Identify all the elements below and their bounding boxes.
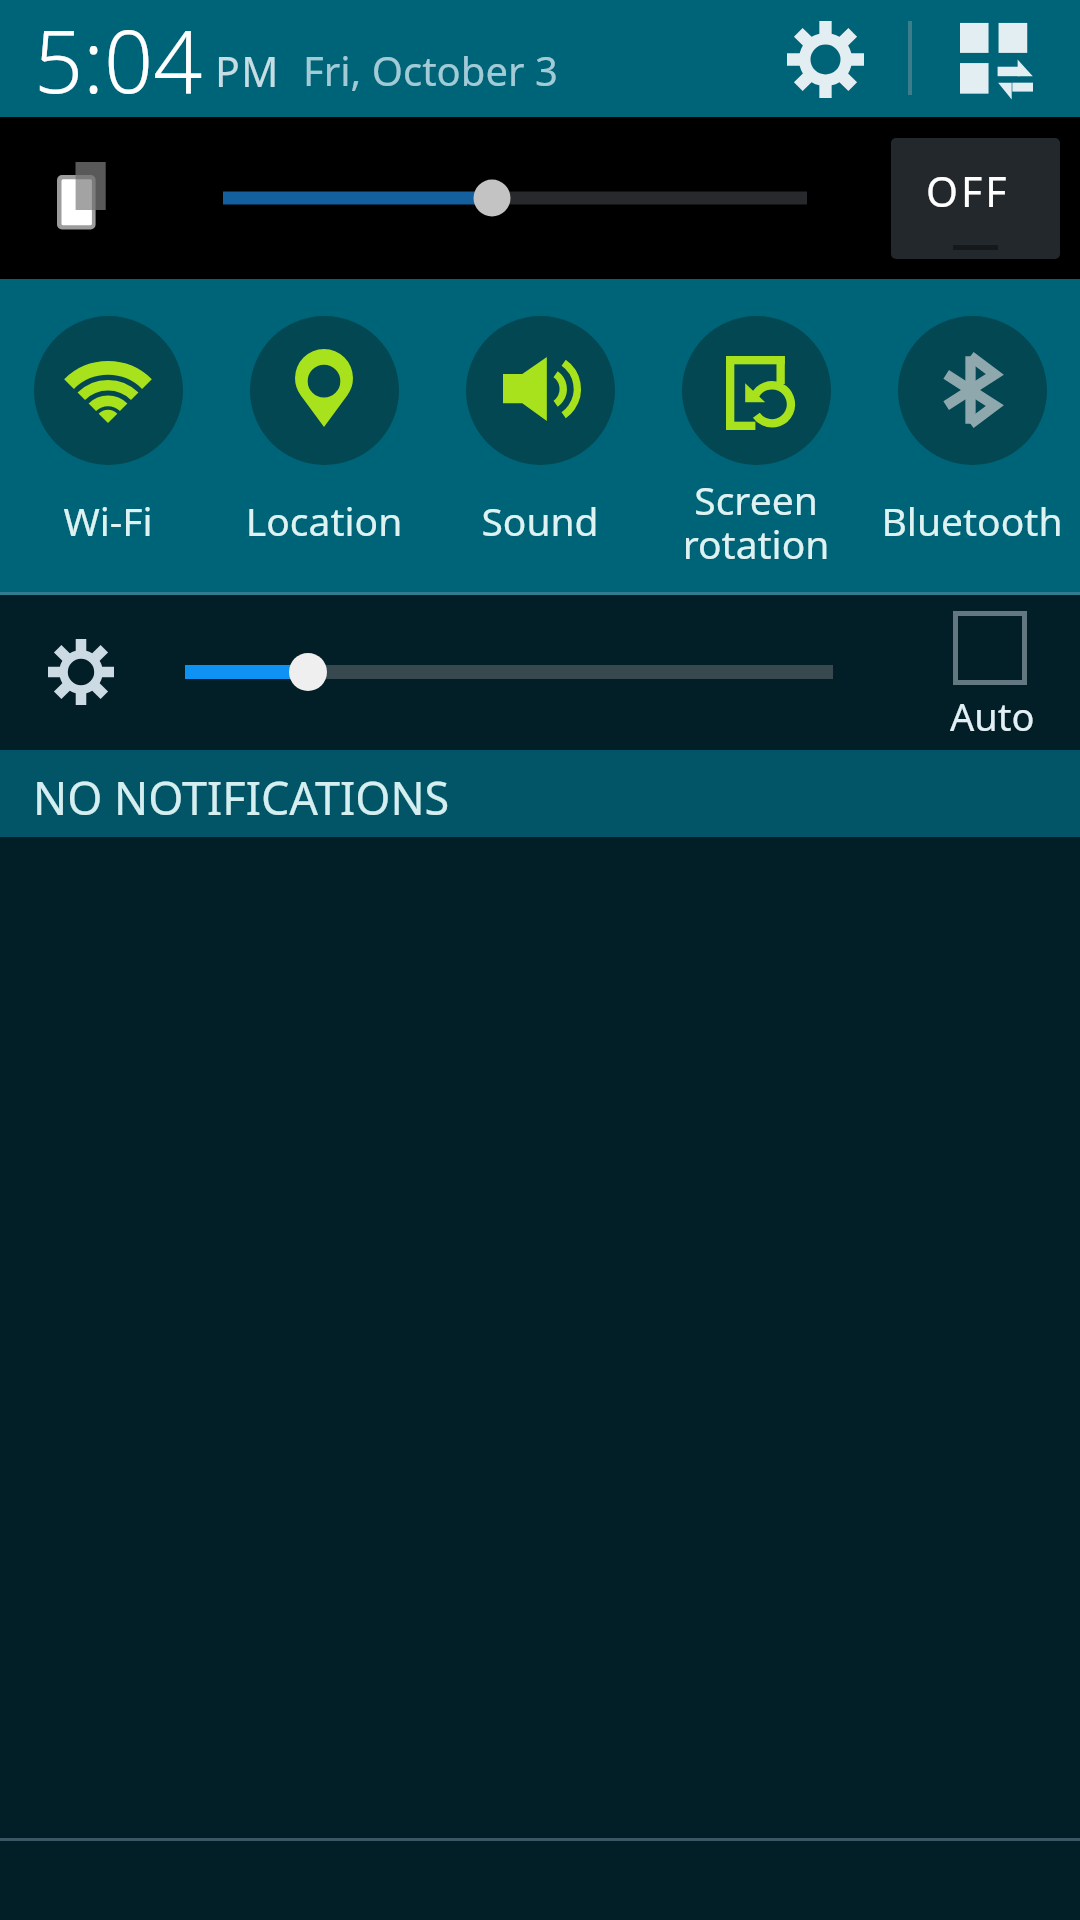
button[interactable]: Settings <box>776 10 875 109</box>
staticText: Sound <box>433 494 647 547</box>
staticText: NO NOTIFICATIONS <box>33 767 450 828</box>
button[interactable]: Screen mirroring <box>40 147 122 249</box>
button[interactable]: Quick settings panel <box>945 10 1047 112</box>
button[interactable]: Bluetooth <box>864 279 1080 595</box>
button[interactable]: Volume level <box>200 157 830 239</box>
staticText: Fri, October 3 <box>303 43 558 97</box>
button[interactable]: OFF <box>891 138 1060 259</box>
staticText: Wi-Fi <box>1 494 215 547</box>
button[interactable]: Screen rotation <box>648 279 864 595</box>
button[interactable]: Sound <box>432 279 648 595</box>
button[interactable]: Auto <box>930 595 1050 750</box>
button[interactable]: Location <box>216 279 432 595</box>
staticText: Auto <box>950 690 1035 742</box>
staticText: 5:04 <box>34 1 203 118</box>
button[interactable]: Wi-Fi <box>0 279 216 595</box>
button[interactable]: Brightness level <box>160 631 860 713</box>
staticText: Screen rotation <box>649 473 863 570</box>
staticText: Location <box>217 494 431 547</box>
staticText: OFF <box>926 163 1010 219</box>
staticText: Bluetooth <box>865 494 1079 547</box>
staticText: PM <box>215 43 280 99</box>
